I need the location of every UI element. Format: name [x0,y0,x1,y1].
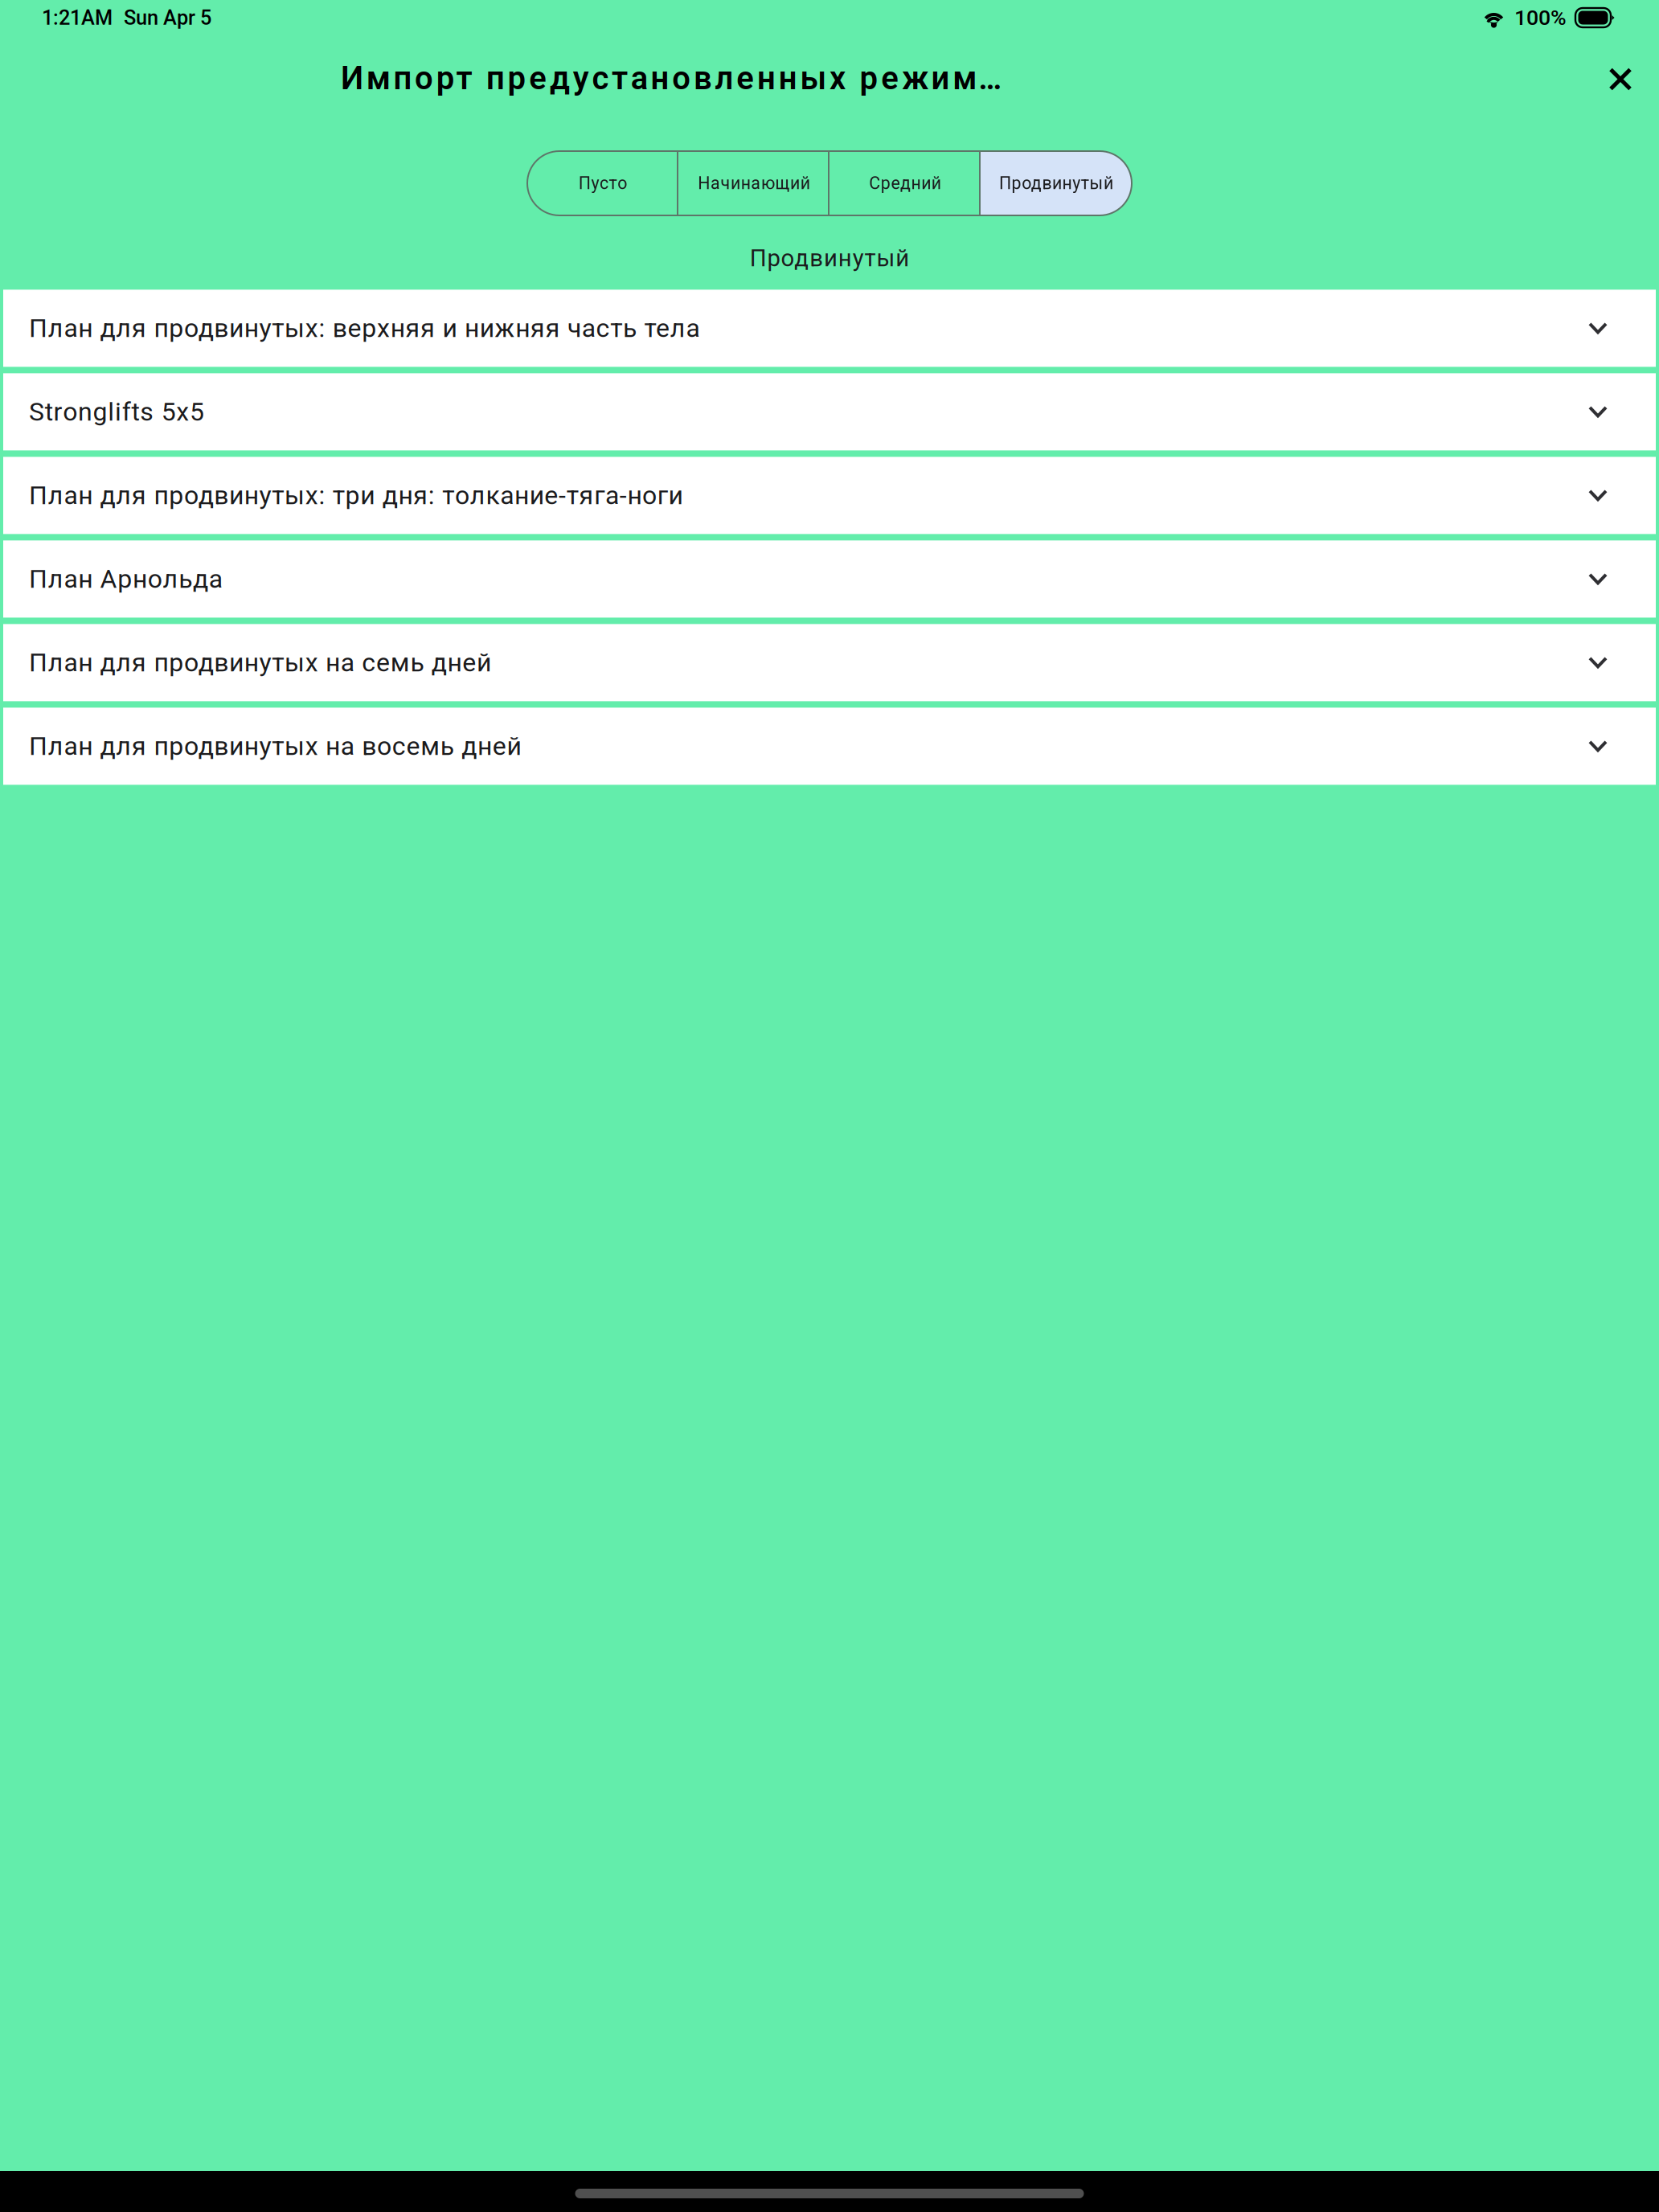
staticText: Средний [869,173,941,193]
staticText: Stronglifts 5x5 [29,397,204,427]
button[interactable]: Продвинутый [981,151,1132,215]
staticText: План для продвинутых на восемь дней [29,731,521,761]
staticText: План для продвинутых на семь дней [29,648,491,678]
staticText: Sun Apr 5 [124,6,211,30]
staticText: План Арнольда [29,564,222,594]
button[interactable]: План для продвинутых на семь дней [3,624,1656,701]
staticText: 100% [1514,5,1567,30]
button[interactable]: Stronglifts 5x5 [3,373,1656,450]
button[interactable]: План для продвинутых на восемь дней [3,708,1656,785]
staticText: План для продвинутых: три дня: толкание-… [29,480,683,510]
button[interactable]: Close [1590,37,1651,98]
staticText: Продвинутый [750,244,909,272]
button[interactable]: Средний [829,151,981,215]
staticText: Начинающий [698,173,810,193]
button[interactable]: План Арнольда [3,540,1656,618]
staticText: 1:21AM [42,6,113,30]
staticText: Продвинутый [999,173,1113,193]
button[interactable]: Начинающий [678,151,829,215]
button[interactable]: План для продвинутых: верхняя и нижняя ч… [3,290,1656,367]
staticText: План для продвинутых: верхняя и нижняя ч… [29,313,700,343]
staticText: Пусто [579,173,627,193]
button[interactable]: План для продвинутых: три дня: толкание-… [3,457,1656,534]
staticText: Импорт предустановленных режимов [341,59,1003,97]
button[interactable]: Пусто [527,151,678,215]
